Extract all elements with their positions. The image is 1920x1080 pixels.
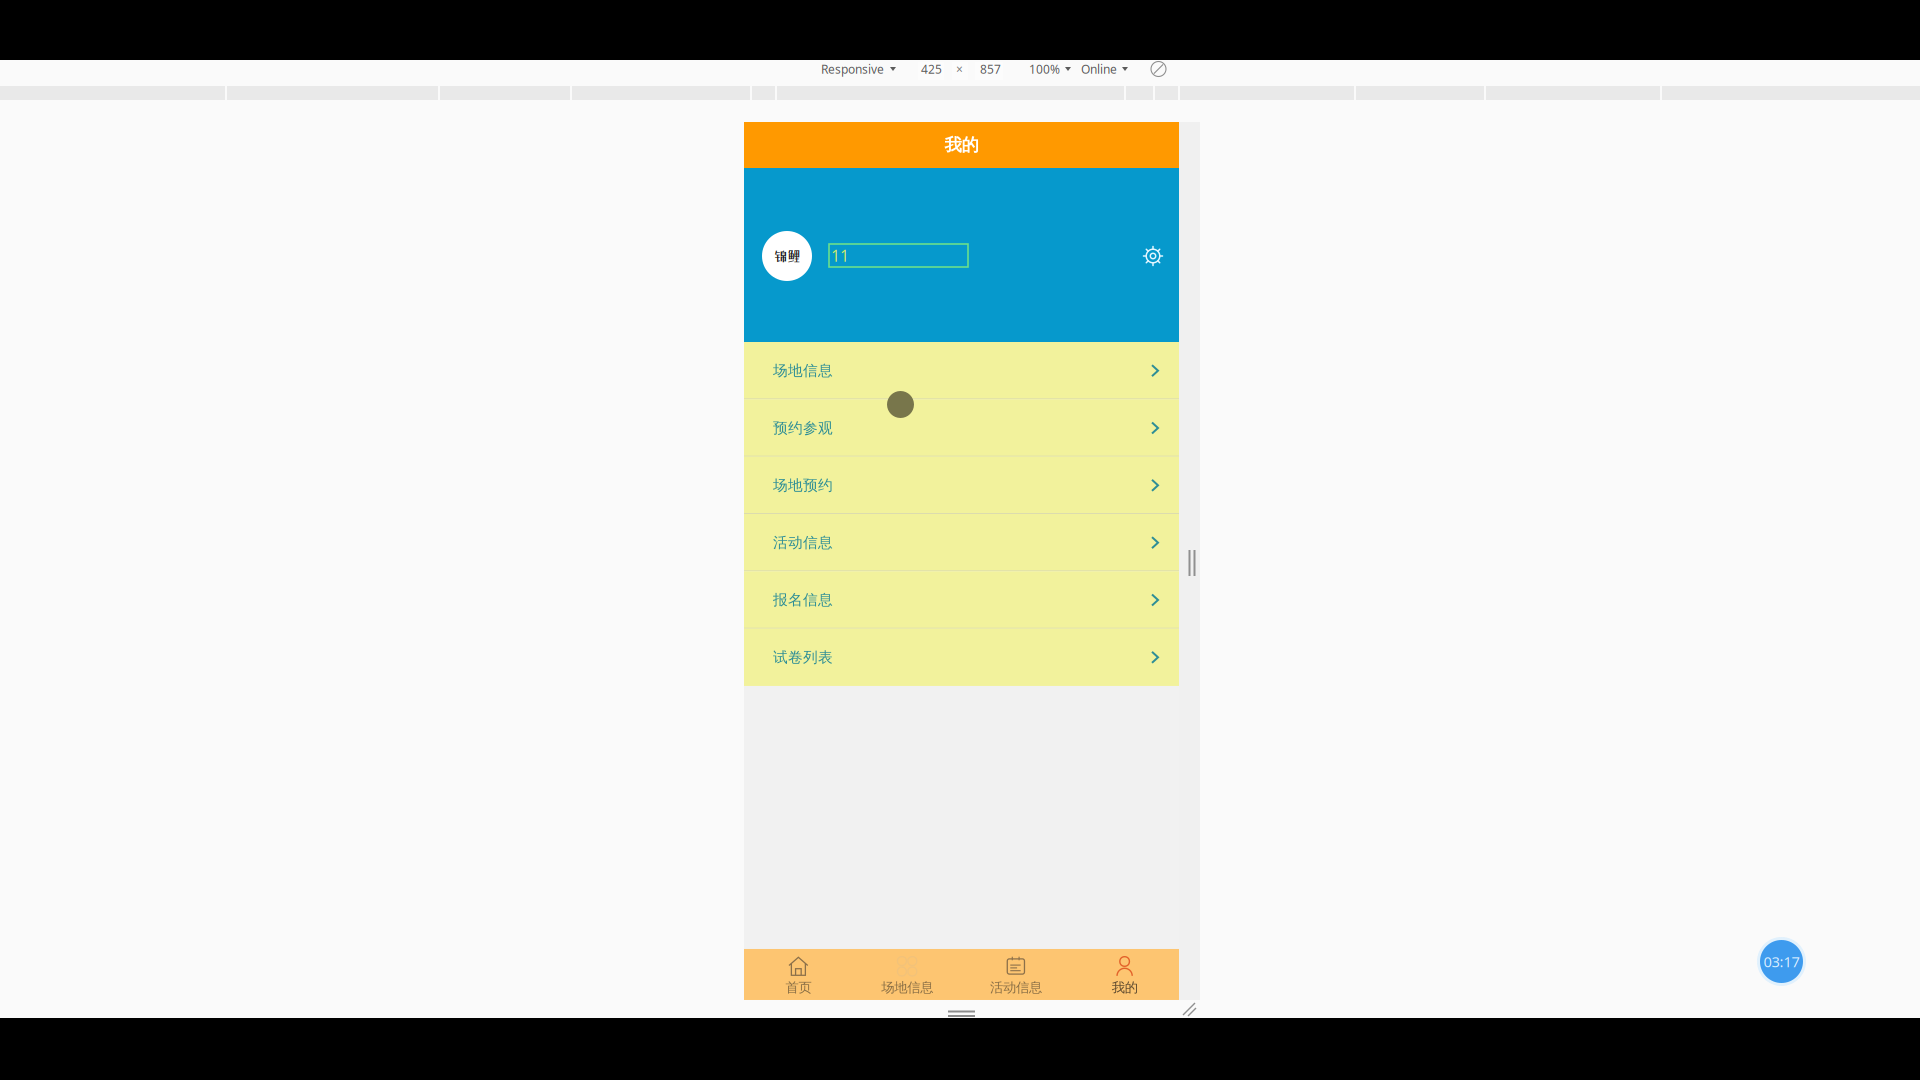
button[interactable]: 报名信息 [744, 571, 1179, 629]
staticText: 我的 [1112, 979, 1138, 996]
staticText: 活动信息 [773, 534, 833, 552]
staticText: 03:17 [1763, 952, 1799, 971]
staticText: 场地预约 [773, 476, 833, 494]
staticText: 预约参观 [773, 419, 833, 437]
button[interactable]: 活动信息 [744, 514, 1179, 571]
button[interactable]: Online [1081, 61, 1128, 77]
staticText: 11 [831, 245, 849, 266]
button[interactable]: 预约参观 [744, 399, 1179, 457]
button[interactable]: 场地信息 [744, 342, 1179, 399]
staticText: Online [1081, 61, 1117, 77]
button[interactable]: Avatar [762, 231, 812, 281]
button[interactable]: Clock [1757, 937, 1806, 986]
button[interactable]: 活动信息 [961, 947, 1070, 1001]
staticText: 试卷列表 [773, 648, 833, 666]
button[interactable]: 我的 [1070, 947, 1179, 1001]
staticText: 我的 [944, 134, 978, 156]
staticText: 首页 [785, 979, 811, 996]
staticText: 场地信息 [881, 979, 933, 996]
staticText: 锦鲤 [774, 248, 800, 264]
staticText: 场地信息 [773, 362, 833, 380]
staticText: 857 [980, 61, 1001, 77]
staticText: 425 [921, 61, 942, 77]
button[interactable]: 试卷列表 [744, 629, 1179, 686]
button[interactable]: Throttling [1151, 61, 1166, 76]
staticText: × [956, 61, 963, 77]
button[interactable]: Responsive [821, 61, 896, 77]
staticText: 活动信息 [990, 979, 1042, 996]
button[interactable]: 100% [1029, 61, 1071, 77]
staticText: 100% [1029, 61, 1060, 77]
staticText: Responsive [821, 61, 884, 77]
button[interactable]: 场地预约 [744, 457, 1179, 514]
button[interactable]: Settings [1138, 241, 1168, 271]
staticText: 报名信息 [773, 591, 833, 609]
button[interactable]: 首页 [744, 947, 853, 1001]
button[interactable]: 场地信息 [853, 947, 962, 1001]
